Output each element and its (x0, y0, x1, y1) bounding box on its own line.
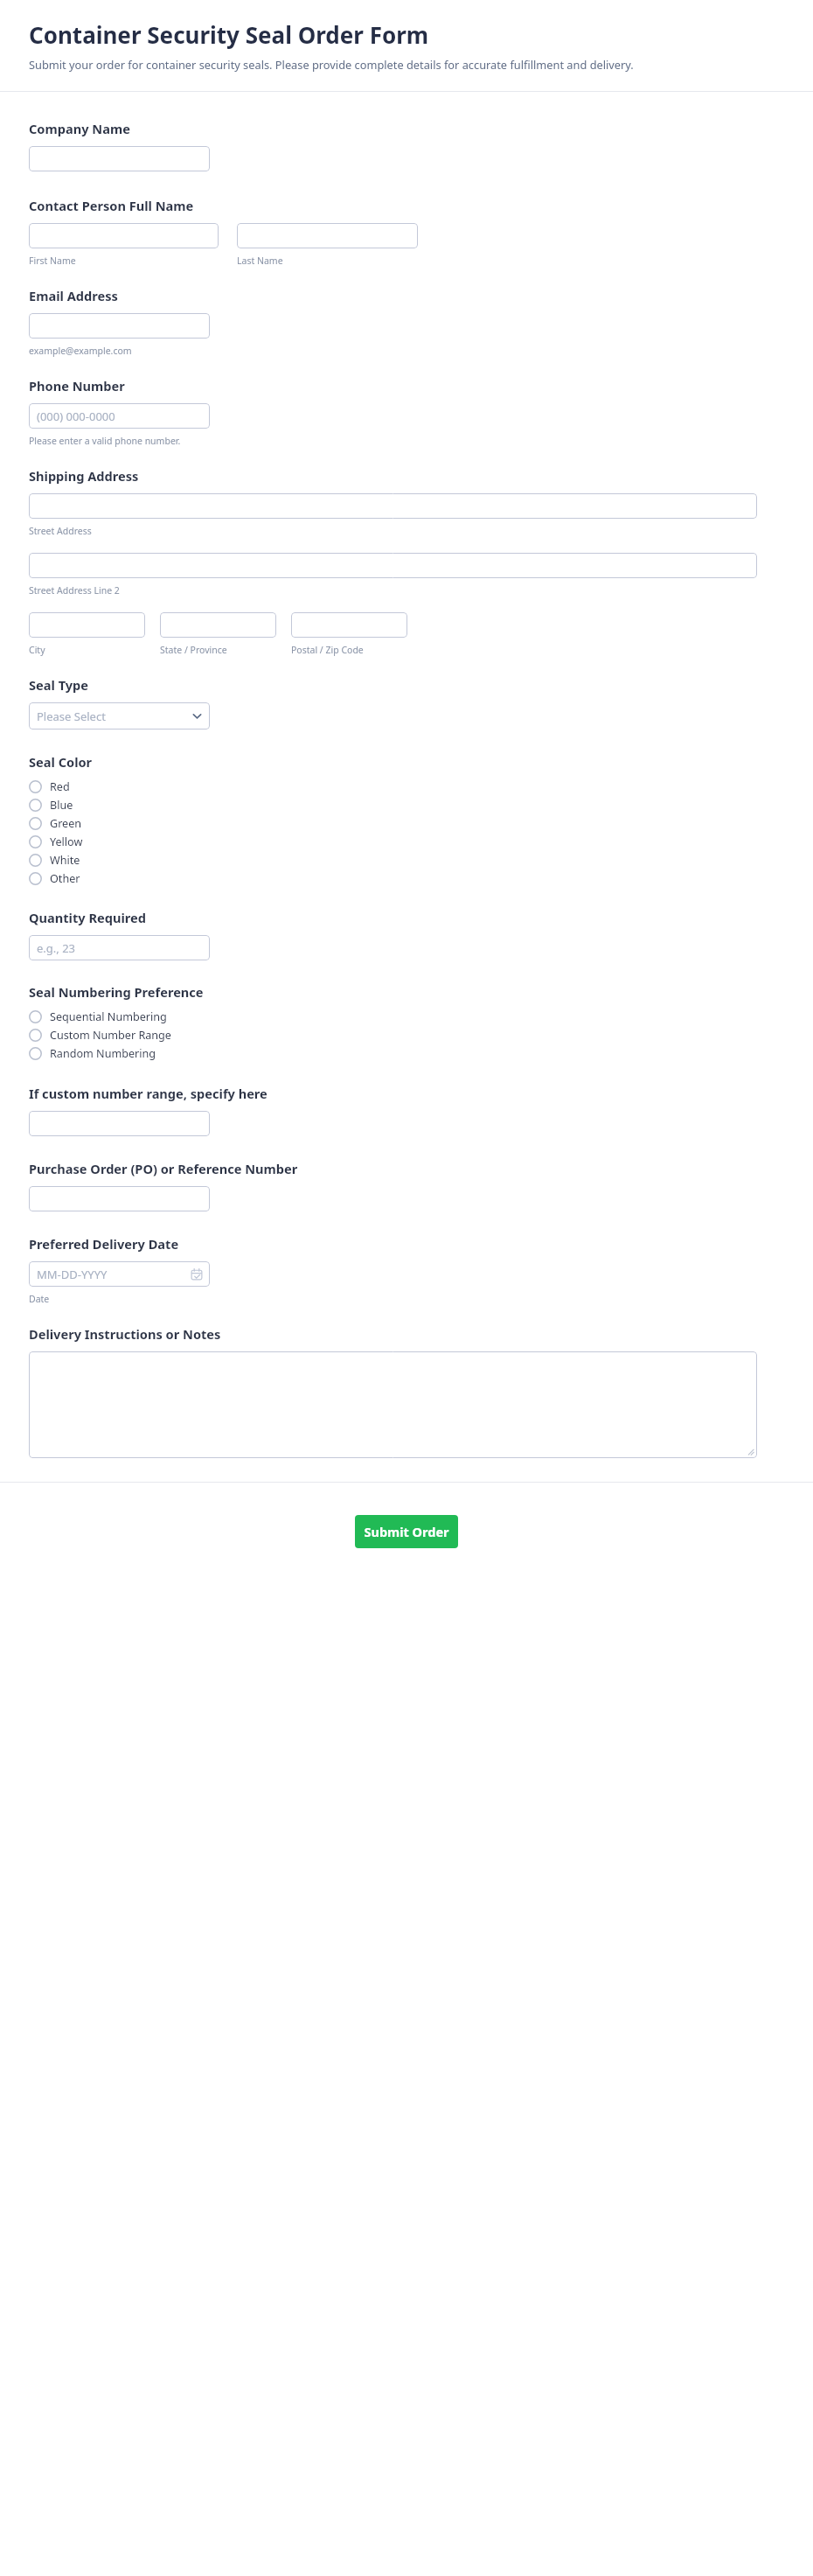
staticText: Delivery Instructions or Notes (29, 1325, 221, 1343)
button[interactable]: First Name (29, 223, 219, 248)
staticText: Custom Number Range (50, 1028, 171, 1043)
button[interactable]: Blue (29, 796, 73, 814)
button[interactable]: Purchase Order or Reference Number (29, 1186, 210, 1211)
button[interactable]: Submit Order (355, 1515, 458, 1548)
staticText: Please Select (37, 709, 106, 724)
staticText: Email Address (29, 287, 118, 304)
staticText: Submit Order (364, 1523, 449, 1540)
button[interactable]: Phone Number (29, 403, 210, 429)
staticText: e.g., 23 (37, 940, 76, 956)
staticText: example@example.com (29, 345, 132, 357)
button[interactable]: Street Address Line 2 (29, 553, 757, 578)
button[interactable]: Sequential Numbering (29, 1008, 167, 1026)
staticText: Date (29, 1293, 50, 1305)
staticText: Sequential Numbering (50, 1009, 167, 1024)
staticText: MM-DD-YYYY (37, 1267, 108, 1282)
button[interactable]: Email Address (29, 313, 210, 339)
button[interactable]: Other (29, 869, 80, 888)
staticText: Red (50, 779, 70, 794)
staticText: Seal Type (29, 676, 89, 694)
staticText: Blue (50, 798, 73, 813)
staticText: Postal / Zip Code (291, 644, 364, 656)
button[interactable]: Postal / Zip Code (291, 612, 407, 638)
button[interactable]: Street Address (29, 493, 757, 519)
staticText: Green (50, 816, 82, 831)
button[interactable]: Random Numbering (29, 1044, 156, 1063)
staticText: Quantity Required (29, 909, 146, 926)
button[interactable]: Company Name (29, 146, 210, 171)
staticText: First Name (29, 255, 76, 267)
staticText: Other (50, 871, 80, 886)
staticText: Seal Color (29, 753, 93, 771)
staticText: Contact Person Full Name (29, 197, 194, 214)
button[interactable]: Green (29, 814, 82, 833)
staticText: Random Numbering (50, 1046, 156, 1061)
button[interactable]: State / Province (160, 612, 276, 638)
staticText: White (50, 853, 80, 868)
staticText: Container Security Seal Order Form (29, 19, 429, 50)
staticText: (000) 000-0000 (37, 408, 115, 424)
staticText: Street Address (29, 525, 92, 537)
button[interactable]: Red (29, 778, 70, 796)
button[interactable]: Preferred Delivery Date (29, 1261, 210, 1287)
staticText: Phone Number (29, 377, 125, 394)
button[interactable]: White (29, 851, 80, 869)
button[interactable]: Seal Type, Please Select (29, 702, 210, 730)
button[interactable]: Quantity Required (29, 935, 210, 960)
staticText: Please enter a valid phone number. (29, 435, 181, 447)
staticText: Purchase Order (PO) or Reference Number (29, 1160, 298, 1177)
button[interactable]: Last Name (237, 223, 418, 248)
button[interactable]: City (29, 612, 145, 638)
button[interactable]: Delivery Instructions or Notes (29, 1351, 757, 1458)
staticText: Submit your order for container security… (29, 57, 634, 72)
staticText: Shipping Address (29, 467, 139, 485)
staticText: Yellow (50, 834, 83, 849)
staticText: Preferred Delivery Date (29, 1235, 179, 1253)
staticText: If custom number range, specify here (29, 1085, 268, 1102)
staticText: Last Name (237, 255, 283, 267)
staticText: State / Province (160, 644, 227, 656)
button[interactable]: Yellow (29, 833, 83, 851)
staticText: City (29, 644, 45, 656)
staticText: Seal Numbering Preference (29, 983, 204, 1001)
staticText: Company Name (29, 120, 130, 137)
staticText: Street Address Line 2 (29, 584, 120, 597)
button[interactable]: Custom Number Range (29, 1026, 171, 1044)
button[interactable]: If custom number range, specify here (29, 1111, 210, 1136)
